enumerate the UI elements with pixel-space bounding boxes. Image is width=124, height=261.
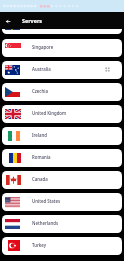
button[interactable]: United States: [2, 193, 122, 211]
button[interactable]: Canada: [2, 171, 122, 189]
button[interactable]: Singapore: [2, 39, 122, 57]
staticText: Turkey: [32, 242, 47, 248]
button[interactable]: Back: [2, 15, 14, 27]
button[interactable]: Turkey: [2, 237, 122, 255]
button[interactable]: Ireland: [2, 127, 122, 145]
button[interactable]: Options: [103, 65, 112, 74]
staticText: Netherlands: [32, 220, 59, 226]
staticText: Australia: [32, 66, 51, 72]
button[interactable]: [2, 29, 122, 34]
staticText: Romania: [32, 154, 51, 160]
staticText: Servers: [22, 17, 43, 24]
staticText: United States: [32, 198, 61, 204]
button[interactable]: United Kingdom: [2, 105, 122, 123]
button[interactable]: Netherlands: [2, 215, 122, 233]
staticText: Canada: [32, 176, 48, 182]
staticText: Ireland: [32, 132, 48, 138]
button[interactable]: Romania: [2, 149, 122, 167]
staticText: Czechia: [32, 88, 48, 94]
staticText: Singapore: [32, 44, 54, 50]
button[interactable]: Czechia: [2, 83, 122, 101]
button[interactable]: Australia: [2, 61, 122, 79]
staticText: United Kingdom: [32, 110, 67, 116]
